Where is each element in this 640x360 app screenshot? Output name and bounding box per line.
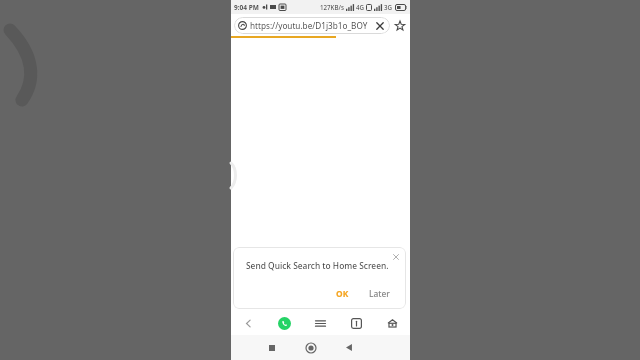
button[interactable]: Bookmark bbox=[392, 18, 407, 33]
button[interactable]: Home bbox=[374, 311, 410, 335]
staticText: 3G bbox=[384, 3, 393, 11]
button[interactable]: WhatsApp bbox=[266, 311, 302, 335]
button[interactable]: Recent apps bbox=[252, 335, 291, 360]
staticText: https://youtu.be/D1j3b1o_BOY bbox=[250, 20, 368, 31]
button[interactable]: Menu bbox=[302, 311, 338, 335]
button[interactable]: https://youtu.be/D1j3b1o_BOY bbox=[234, 17, 390, 34]
button[interactable]: Back bbox=[330, 335, 369, 360]
staticText: Send Quick Search to Home Screen. bbox=[246, 260, 389, 271]
staticText: Later bbox=[369, 288, 390, 299]
staticText: 127KB/s bbox=[320, 3, 344, 11]
button[interactable]: OK bbox=[330, 285, 355, 302]
button[interactable]: Dismiss bbox=[390, 251, 402, 263]
button[interactable]: Stop loading bbox=[373, 19, 386, 32]
staticText: 4G bbox=[356, 3, 365, 11]
button[interactable]: Later bbox=[363, 285, 396, 302]
staticText: OK bbox=[336, 288, 349, 299]
button[interactable]: Home bbox=[291, 335, 330, 360]
button[interactable]: Tabs bbox=[338, 311, 374, 335]
staticText: 9:04 PM bbox=[234, 3, 259, 12]
button[interactable]: Back bbox=[231, 311, 266, 335]
